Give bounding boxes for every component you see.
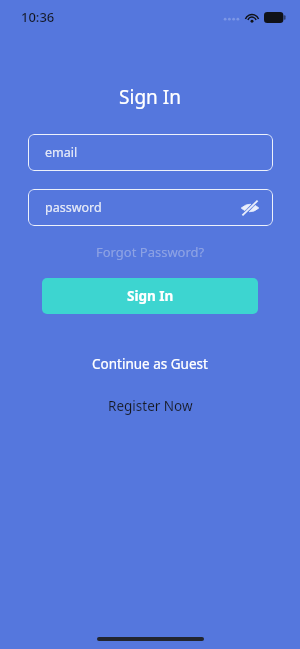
staticText: Forgot Password? bbox=[96, 243, 205, 261]
button[interactable]: Continue as Guest bbox=[82, 351, 218, 377]
button[interactable]: Show password bbox=[237, 195, 263, 221]
button[interactable]: password bbox=[28, 189, 273, 226]
staticText: Sign In bbox=[119, 84, 181, 110]
staticText: 10:36 bbox=[21, 8, 55, 26]
staticText: Register Now bbox=[108, 397, 193, 415]
staticText: Continue as Guest bbox=[92, 355, 208, 373]
button[interactable]: email bbox=[28, 134, 273, 171]
staticText: password bbox=[45, 199, 102, 216]
staticText: email bbox=[45, 144, 78, 161]
button[interactable]: Forgot Password? bbox=[88, 240, 213, 264]
button[interactable]: Register Now bbox=[98, 393, 203, 419]
staticText: Sign In bbox=[127, 287, 174, 305]
button[interactable]: Sign In bbox=[42, 278, 258, 314]
